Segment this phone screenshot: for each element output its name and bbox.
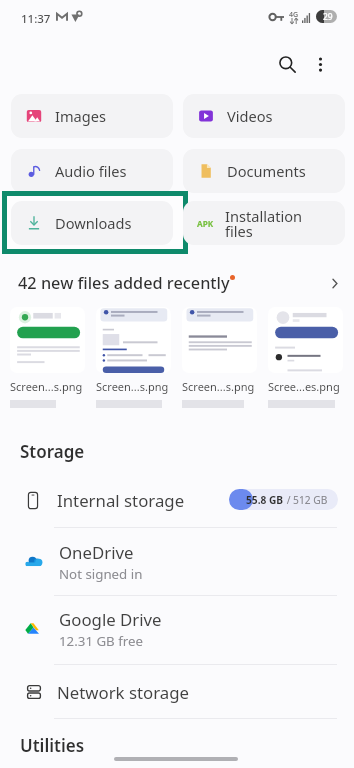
staticText: APK [197, 218, 214, 229]
button[interactable]: Audio files [11, 149, 173, 193]
staticText: Screen...s.png [182, 379, 255, 394]
button[interactable]: Documents [183, 149, 345, 193]
staticText: / 512 GB [284, 493, 328, 507]
staticText: 4G [289, 10, 299, 20]
staticText: Google Drive [59, 608, 162, 631]
button[interactable]: Videos [183, 94, 345, 138]
button[interactable]: Search [267, 44, 307, 84]
button[interactable]: Downloads [11, 201, 173, 245]
button[interactable]: More options [300, 44, 340, 84]
staticText: 55.8 GB [246, 493, 284, 507]
button[interactable]: APK [183, 201, 345, 245]
button[interactable]: Google Drive [0, 596, 354, 664]
staticText: Network storage [57, 681, 190, 704]
staticText: Utilities [20, 734, 85, 757]
staticText: Screen...s.png [96, 379, 169, 394]
staticText: OneDrive [59, 541, 134, 564]
button[interactable]: Internal storage [0, 477, 354, 525]
button[interactable]: Images [11, 94, 173, 138]
button[interactable]: OneDrive [0, 528, 354, 595]
staticText: Downloads [55, 213, 132, 233]
button[interactable]: Scree...es.png [268, 307, 343, 408]
button[interactable]: Screen...s.png [182, 307, 257, 408]
staticText: 12.31 GB free [59, 632, 144, 650]
staticText: Internal storage [57, 489, 185, 512]
staticText: Documents [227, 161, 306, 181]
staticText: Installation files [225, 206, 303, 241]
staticText: Screen...s.png [10, 379, 83, 394]
staticText: Storage [20, 440, 85, 463]
staticText: 11:37 [21, 11, 51, 27]
staticText: Scree...es.png [268, 379, 340, 394]
button[interactable]: Network storage [0, 665, 354, 718]
staticText: Videos [227, 106, 273, 126]
staticText: 42 new files added recently [18, 272, 230, 294]
staticText: Audio files [55, 161, 127, 181]
staticText: 29 [323, 11, 333, 23]
button[interactable]: Screen...s.png [10, 307, 85, 408]
staticText: Not signed in [59, 565, 143, 583]
staticText: Images [55, 106, 106, 126]
button[interactable]: Screen...s.png [96, 307, 171, 408]
button[interactable]: 42 new files added recently [0, 270, 354, 296]
